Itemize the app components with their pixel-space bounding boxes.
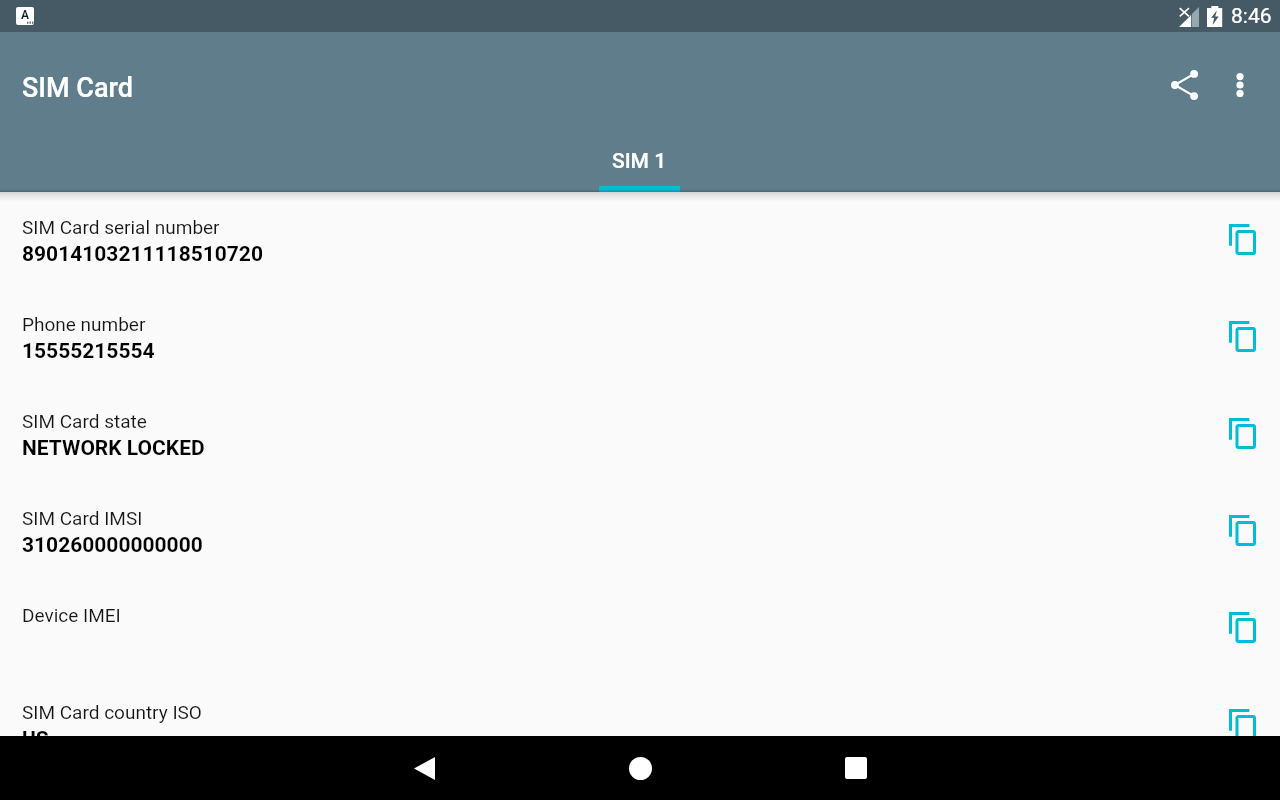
button[interactable]: SIM Card IMSI (0, 483, 1280, 580)
button[interactable]: Copy (1204, 386, 1280, 483)
staticText: NETWORK LOCKED (22, 436, 205, 461)
button[interactable]: Phone number (0, 289, 1280, 386)
staticText: SIM Card country ISO (22, 701, 202, 723)
button[interactable]: More options (1212, 57, 1268, 113)
button[interactable]: Device IMEI (0, 580, 1280, 677)
staticText: SIM Card serial number (22, 216, 220, 238)
staticText: A (21, 8, 30, 22)
staticText: US (22, 727, 49, 736)
button[interactable]: Copy (1204, 483, 1280, 580)
staticText: 8:46 (1231, 4, 1272, 29)
button[interactable]: Share (1156, 57, 1212, 113)
button[interactable]: SIM Card state (0, 386, 1280, 483)
button[interactable]: Copy (1204, 289, 1280, 386)
button[interactable]: Copy (1204, 192, 1280, 289)
button[interactable]: Copy (1204, 677, 1280, 736)
button[interactable]: Recents (824, 736, 888, 800)
staticText: Device IMEI (22, 604, 121, 626)
staticText: 89014103211118510720 (22, 242, 263, 267)
button[interactable]: SIM Card country ISO (0, 677, 1280, 736)
staticText: Phone number (22, 313, 146, 335)
staticText: 15555215554 (22, 339, 155, 364)
button[interactable]: SIM Card serial number (0, 192, 1280, 289)
staticText: SIM Card state (22, 410, 147, 432)
button[interactable]: Copy (1204, 580, 1280, 677)
staticText: SIM Card (22, 72, 134, 104)
staticText: SIM Card IMSI (22, 507, 143, 529)
staticText: 310260000000000 (22, 533, 203, 558)
button[interactable]: SIM 1 (599, 142, 680, 192)
staticText: SIM 1 (612, 149, 667, 174)
button[interactable]: Back (392, 736, 456, 800)
button[interactable]: Home (608, 736, 672, 800)
